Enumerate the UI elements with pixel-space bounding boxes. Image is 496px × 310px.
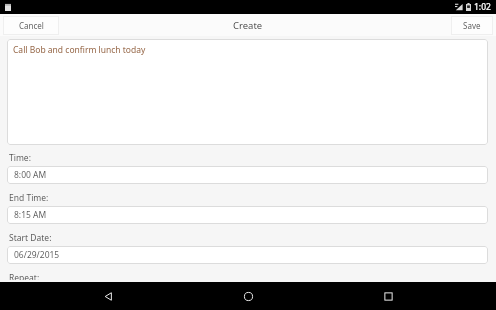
button[interactable]: 8:00 AM [7,166,488,184]
staticText: Cancel [19,20,44,31]
button[interactable]: 06/29/2015 [7,246,488,264]
button[interactable]: Home [216,282,280,310]
staticText: Save [463,20,481,31]
staticText: 8:15 AM [14,209,47,221]
button[interactable]: Cancel [3,16,59,35]
staticText: Repeat: [9,272,40,280]
staticText: End Time: [9,192,49,204]
staticText: Start Date: [9,232,52,244]
staticText: Create [233,19,263,32]
staticText: 8:00 AM [14,169,47,181]
staticText: 06/29/2015 [14,249,60,261]
staticText: 1:02 [474,1,491,13]
button[interactable]: Back [76,282,140,310]
staticText: Call Bob and confirm lunch today [13,44,146,56]
button[interactable]: 8:15 AM [7,206,488,224]
staticText: Time: [9,152,31,164]
button[interactable]: Save [451,16,493,35]
button[interactable]: Call Bob and confirm lunch today [7,39,488,145]
button[interactable]: Recent apps [356,282,420,310]
